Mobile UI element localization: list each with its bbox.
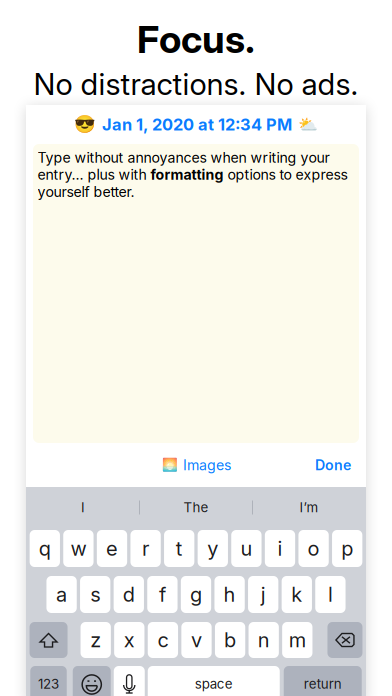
button[interactable]: h	[214, 576, 245, 613]
button[interactable]: v	[181, 622, 212, 658]
staticText: The	[183, 499, 208, 515]
staticText: o	[308, 536, 320, 561]
staticText: q	[39, 536, 51, 561]
button[interactable]: x	[114, 622, 144, 658]
staticText: a	[56, 582, 67, 607]
staticText: f	[159, 582, 166, 607]
staticText: Done	[315, 456, 351, 473]
staticText: l	[328, 582, 333, 607]
button[interactable]: w	[63, 530, 93, 567]
button[interactable]: q	[30, 530, 60, 567]
button[interactable]: s	[80, 576, 110, 613]
staticText: 123	[38, 676, 59, 692]
staticText: Focus.	[137, 16, 255, 62]
button[interactable]: t	[164, 530, 194, 567]
button[interactable]: I	[27, 487, 139, 528]
button[interactable]: d	[114, 576, 144, 613]
staticText: Jan 1, 2020 at 12:34 PM	[102, 115, 292, 134]
staticText: x	[124, 628, 135, 652]
staticText: v	[191, 628, 202, 652]
staticText: 😎	[74, 114, 96, 135]
button[interactable]: n	[248, 622, 279, 658]
staticText: w	[70, 536, 86, 561]
staticText: z	[90, 628, 101, 652]
staticText: y	[207, 536, 218, 561]
staticText: I	[81, 499, 85, 515]
button[interactable]: o	[298, 530, 329, 567]
button[interactable]: f	[147, 576, 177, 613]
button[interactable]: m	[282, 622, 312, 658]
staticText: b	[224, 628, 236, 652]
button[interactable]: b	[215, 622, 245, 658]
staticText: j	[261, 582, 266, 607]
button[interactable]: e	[97, 530, 127, 567]
staticText: No distractions. No ads.	[33, 66, 358, 102]
staticText: space	[195, 676, 233, 692]
button[interactable]: return	[284, 666, 362, 696]
button[interactable]: Dictate	[114, 666, 145, 696]
staticText: Type without annoyances when writing you…	[37, 149, 347, 200]
staticText: m	[289, 628, 306, 652]
button[interactable]: p	[332, 530, 362, 567]
button[interactable]: Emoji	[73, 666, 111, 696]
staticText: c	[157, 628, 168, 652]
staticText: k	[291, 582, 302, 607]
button[interactable]: Shift	[29, 622, 67, 658]
button[interactable]: a	[46, 576, 77, 613]
button[interactable]: The	[140, 487, 252, 528]
staticText: Images	[183, 456, 231, 473]
button[interactable]: Delete	[327, 622, 362, 658]
staticText: u	[240, 536, 252, 561]
button[interactable]: Done	[309, 450, 357, 480]
button[interactable]: 🌅	[158, 450, 235, 480]
button[interactable]: l	[315, 576, 345, 613]
button[interactable]: i	[265, 530, 295, 567]
staticText: t	[176, 536, 183, 561]
button[interactable]: 123	[30, 666, 67, 696]
staticText: d	[123, 582, 135, 607]
staticText: n	[258, 628, 270, 652]
staticText: p	[341, 536, 353, 561]
staticText: i	[277, 536, 282, 561]
button[interactable]: r	[130, 530, 161, 567]
staticText: I’m	[299, 499, 318, 515]
button[interactable]: g	[181, 576, 211, 613]
button[interactable]: k	[282, 576, 312, 613]
staticText: return	[304, 676, 342, 692]
button[interactable]: y	[198, 530, 228, 567]
staticText: 🌅	[162, 458, 178, 472]
staticText: g	[190, 582, 202, 607]
staticText: s	[90, 582, 100, 607]
staticText: r	[142, 536, 149, 561]
button[interactable]: u	[231, 530, 261, 567]
staticText: h	[224, 582, 236, 607]
button[interactable]: c	[148, 622, 178, 658]
button[interactable]: z	[80, 622, 111, 658]
button[interactable]: I’m	[253, 487, 365, 528]
staticText: ⛅	[298, 115, 318, 134]
button[interactable]: j	[248, 576, 278, 613]
button[interactable]: space	[148, 666, 280, 696]
staticText: e	[106, 536, 118, 561]
